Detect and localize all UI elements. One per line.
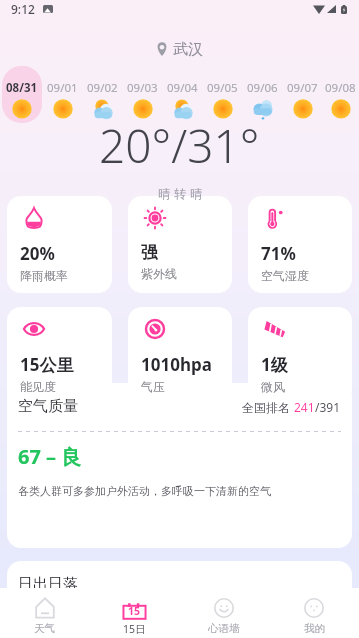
staticText: 09/08 [325,80,356,96]
button[interactable]: 1级 [248,307,352,404]
staticText: 08/31 [6,80,38,96]
staticText: 09/06 [247,80,278,96]
staticText: 空气质量 [18,397,78,416]
staticText: 1010hpa [141,353,212,376]
button[interactable]: 1010hpa [128,307,232,404]
staticText: 武汉 [173,40,203,59]
staticText: 微风 [261,379,285,394]
staticText: 降雨概率 [20,268,68,283]
button[interactable]: 71% [248,196,352,293]
button[interactable]: 09/07 [282,66,322,123]
staticText: 心语墙 [208,622,240,635]
button[interactable]: 我的 [269,588,359,638]
staticText: 09/03 [127,80,158,96]
staticText: 1级 [261,353,288,376]
button[interactable]: 09/05 [202,66,242,123]
staticText: 我的 [304,622,325,635]
staticText: 09/04 [167,80,198,96]
button[interactable]: 09/06 [242,66,282,123]
staticText: 气压 [141,379,165,394]
staticText: 强 [141,242,158,263]
staticText: 能见度 [20,379,56,394]
staticText: 20°/31° [99,114,260,177]
staticText: 天气 [34,622,55,635]
button[interactable]: 空气质量 [7,383,352,548]
staticText: 各类人群可多参加户外活动，多呼吸一下清新的空气 [18,484,271,498]
button[interactable]: 15 [89,588,179,638]
staticText: 15 [128,604,141,618]
staticText: 15日 [123,622,146,636]
button[interactable]: 09/02 [82,66,122,123]
staticText: 241 [294,399,315,415]
staticText: 日出日落 [18,575,78,594]
button[interactable]: 09/01 [42,66,82,123]
button[interactable]: 09/08 [322,66,359,123]
button[interactable]: 08/31 [2,66,42,123]
staticText: 20% [20,242,55,265]
staticText: 09/01 [47,80,78,96]
staticText: 67 – 良 [18,443,82,470]
staticText: 71% [261,242,296,265]
button[interactable]: 15公里 [7,307,112,404]
button[interactable]: 09/03 [122,66,162,123]
staticText: 09/05 [207,80,238,96]
staticText: 09/02 [87,80,118,96]
button[interactable]: 天气 [0,588,89,638]
staticText: 全国排名 [242,399,294,415]
staticText: 09/07 [287,80,318,96]
staticText: 15公里 [20,353,74,376]
button[interactable]: 09/04 [162,66,202,123]
staticText: 空气湿度 [261,268,309,283]
button[interactable]: 日出日落 [7,561,352,638]
staticText: 晴转晴 [156,186,204,201]
button[interactable]: 武汉 [0,33,359,65]
staticText: /391 [315,399,341,415]
button[interactable]: 强 [128,196,232,293]
button[interactable]: 心语墙 [179,588,269,638]
staticText: 紫外线 [141,266,177,281]
button[interactable]: 20% [7,196,112,293]
staticText: 9:12 [11,1,35,17]
